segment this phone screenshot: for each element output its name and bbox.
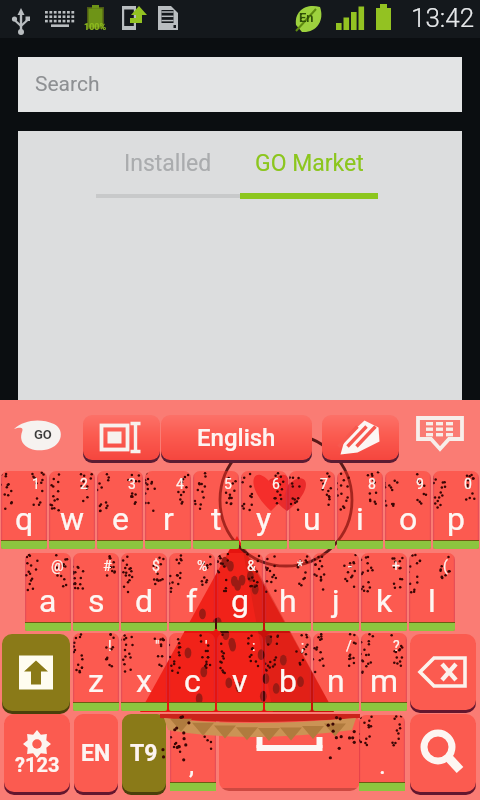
staticText: 7 (320, 476, 328, 492)
staticText: b (279, 662, 297, 700)
staticText: 4 (176, 476, 184, 492)
staticText: v (232, 662, 248, 700)
button[interactable]: e (97, 471, 143, 549)
staticText: 3 (128, 476, 136, 492)
staticText: f (186, 582, 198, 620)
button[interactable]: b (265, 633, 311, 711)
staticText: e (112, 500, 129, 538)
staticText: Search (35, 72, 100, 97)
button[interactable]: o (385, 471, 431, 549)
staticText: $ (152, 558, 160, 574)
staticText: 2 (80, 476, 88, 492)
staticText: , (189, 750, 195, 780)
staticText: n (327, 662, 345, 700)
staticText: i (356, 500, 364, 538)
button[interactable]: GO Market (240, 131, 378, 195)
button[interactable]: Edit (322, 415, 399, 460)
staticText: p (447, 500, 465, 538)
button[interactable]: a (25, 553, 71, 631)
staticText: . (379, 750, 386, 780)
staticText: ' (205, 638, 208, 654)
button[interactable]: d (121, 553, 167, 631)
button[interactable]: x (121, 633, 167, 711)
button[interactable]: T9 (122, 714, 166, 792)
button[interactable]: EN (74, 714, 118, 792)
staticText: GO (34, 427, 52, 442)
staticText: 13:42 (411, 3, 475, 33)
staticText: l (428, 582, 436, 620)
button[interactable]: s (73, 553, 119, 631)
staticText: k (376, 582, 393, 620)
button[interactable]: f (169, 553, 215, 631)
button[interactable]: v (217, 633, 263, 711)
button[interactable]: u (289, 471, 335, 549)
staticText: : (252, 638, 256, 654)
staticText: En (299, 10, 314, 25)
staticText: / (346, 638, 352, 654)
button[interactable]: y (241, 471, 287, 549)
button[interactable]: Search (410, 714, 476, 792)
button[interactable]: Symbols (4, 714, 70, 792)
staticText: u (303, 500, 321, 538)
button[interactable]: n (313, 633, 359, 711)
button[interactable]: p (433, 471, 479, 549)
button[interactable]: Space (219, 714, 360, 791)
staticText: r (163, 500, 174, 538)
button[interactable]: j (313, 553, 359, 631)
button[interactable]: q (1, 471, 47, 549)
button[interactable]: Search (18, 57, 462, 112)
button[interactable]: w (49, 471, 95, 549)
button[interactable]: GO (10, 416, 66, 450)
staticText: - (348, 558, 352, 574)
staticText: 6 (272, 476, 280, 492)
staticText: GO Market (255, 150, 364, 177)
staticText: " (155, 638, 160, 654)
staticText: 1 (32, 476, 40, 492)
staticText: @ (51, 558, 64, 574)
button[interactable]: r (145, 471, 191, 549)
staticText: m (370, 662, 399, 700)
staticText: 8 (368, 476, 376, 492)
staticText: ! (108, 638, 112, 654)
staticText: g (231, 582, 249, 620)
staticText: % (197, 558, 208, 574)
button[interactable]: Installed (96, 131, 240, 195)
staticText: + (392, 558, 400, 574)
staticText: z (88, 662, 104, 700)
staticText: q (15, 500, 34, 538)
staticText: 5 (224, 476, 232, 492)
button[interactable]: English (161, 415, 312, 460)
staticText: j (332, 582, 340, 620)
button[interactable]: l (409, 553, 455, 631)
button[interactable]: h (265, 553, 311, 631)
staticText: ? (393, 638, 400, 654)
button[interactable]: Shift (2, 634, 70, 711)
staticText: Installed (124, 150, 212, 177)
button[interactable] (359, 715, 405, 791)
staticText: s (88, 582, 105, 620)
staticText: x (136, 662, 152, 700)
button[interactable]: t (193, 471, 239, 549)
button[interactable]: z (73, 633, 119, 711)
button[interactable]: Input method (83, 415, 160, 460)
button[interactable]: k (361, 553, 407, 631)
staticText: y (256, 500, 272, 538)
staticText: 0 (464, 476, 472, 492)
staticText: ?123 (15, 753, 60, 776)
staticText: * (297, 558, 304, 574)
button[interactable]: c (169, 633, 215, 711)
button[interactable]: i (337, 471, 383, 549)
staticText: English (197, 424, 276, 452)
staticText: T9 (130, 740, 158, 767)
button[interactable]: g (217, 553, 263, 631)
staticText: d (135, 582, 154, 620)
staticText: 9 (416, 476, 424, 492)
button[interactable] (170, 715, 216, 791)
staticText: 100% (84, 22, 107, 33)
button[interactable]: Hide keyboard (414, 414, 466, 452)
staticText: ( (443, 558, 448, 574)
staticText: & (247, 558, 256, 574)
button[interactable]: Backspace (410, 634, 476, 710)
button[interactable]: m (361, 633, 407, 711)
staticText: ; (301, 638, 304, 654)
